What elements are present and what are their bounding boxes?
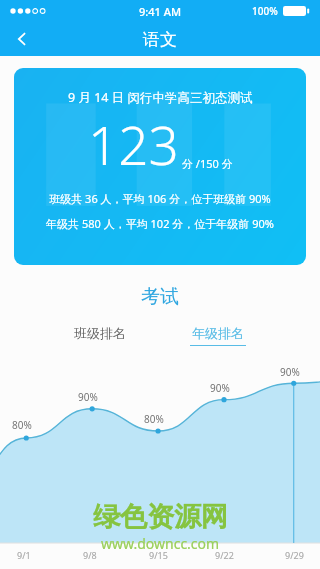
staticText: 9:41 AM: [139, 4, 182, 19]
staticText: 9 月 14 日 闵行中学高三初态测试: [68, 89, 253, 106]
staticText: 9/15: [149, 549, 168, 561]
staticText: 分 /150 分: [182, 156, 233, 171]
staticText: 班级排名: [74, 325, 126, 341]
staticText: 年级排名: [192, 325, 244, 341]
button[interactable]: Back: [0, 22, 44, 56]
staticText: 90%: [78, 390, 98, 404]
staticText: 考试: [141, 285, 179, 309]
staticText: 123: [88, 108, 179, 180]
staticText: 90%: [280, 365, 300, 379]
staticText: 90%: [210, 381, 230, 395]
staticText: 9/22: [215, 549, 234, 561]
staticText: 80%: [12, 418, 32, 432]
button[interactable]: 年级排名: [190, 325, 246, 346]
staticText: 80%: [144, 412, 164, 426]
staticText: www.downcc.com: [101, 534, 220, 553]
staticText: 9/29: [285, 549, 304, 561]
staticText: 班级共 36 人，平均 106 分，位于班级前 90%: [49, 191, 271, 206]
staticText: 100%: [252, 4, 278, 18]
button[interactable]: 班级排名: [74, 325, 126, 341]
staticText: 9/8: [83, 549, 97, 561]
staticText: 语文: [143, 29, 177, 50]
staticText: 年级共 580 人，平均 102 分，位于年级前 90%: [46, 216, 274, 231]
staticText: 绿色资源网: [93, 500, 228, 534]
button[interactable]: 9 月 14 日 闵行中学高三初态测试: [14, 68, 306, 265]
staticText: 9/1: [17, 549, 31, 561]
